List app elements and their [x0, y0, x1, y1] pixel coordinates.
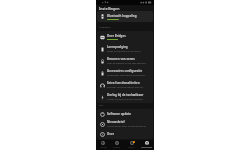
- button[interactable]: Oorlog bij de toelaatbaar: [97, 91, 153, 103]
- button[interactable]: Bewaren van zones: [97, 55, 153, 67]
- button[interactable]: Nieuwsbrief: [97, 119, 153, 129]
- staticText: Planner: [113, 146, 121, 149]
- staticText: Nieuws: [100, 146, 107, 149]
- staticText: Cursus: [128, 146, 135, 149]
- staticText: Bluetooth koppeling: [107, 14, 137, 18]
- staticText: Bekijk je voortgang in de cursus: [107, 50, 141, 53]
- staticText: Over Bridges: [107, 34, 126, 38]
- staticText: Nieuwsbrief: [107, 120, 125, 124]
- staticText: Lorem ipsum dolor sit met de bed en: [107, 125, 147, 128]
- staticText: Oorlog bij de toelaatbaar: [107, 93, 144, 97]
- staticText: Instellingen: [141, 146, 153, 149]
- staticText: Instellingen: [99, 6, 120, 11]
- button[interactable]: Over: [97, 129, 153, 139]
- staticText: Over: [107, 132, 114, 136]
- button[interactable]: Software update: [97, 109, 153, 119]
- button[interactable]: Bluetooth koppeling: [97, 11, 153, 22]
- button[interactable]: Cursus: [124, 140, 139, 150]
- button[interactable]: Nieuws: [96, 140, 110, 150]
- button[interactable]: Extra functionaliteiten: [97, 79, 153, 91]
- staticText: Lorem, aanbod en en en met start: [107, 98, 144, 101]
- button[interactable]: Planner: [110, 140, 124, 150]
- button[interactable]: Over Bridges: [97, 31, 153, 43]
- staticText: Accessoires configuratie: [107, 69, 143, 73]
- staticText: Bewaren van zones: [107, 57, 135, 61]
- staticText: APP: [99, 104, 104, 107]
- staticText: Over de website of ook met BRIDGES: [107, 62, 147, 65]
- staticText: Extra functionaliteiten: [107, 81, 140, 85]
- staticText: Profiteer van jouw toestel met ons: [107, 86, 144, 89]
- staticText: Software update: [107, 112, 131, 116]
- button[interactable]: Leeropvolging: [97, 43, 153, 55]
- button[interactable]: Instellingen: [139, 140, 154, 150]
- staticText: Leeropvolging: [107, 45, 128, 49]
- staticText: configureer makkelijk je accessoires: [107, 74, 145, 77]
- button[interactable]: Accessoires configuratie: [97, 67, 153, 79]
- staticText: ALGEMEEN: [99, 26, 111, 29]
